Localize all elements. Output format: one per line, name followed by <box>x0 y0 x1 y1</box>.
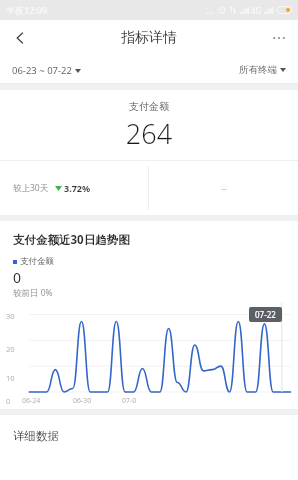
button[interactable]: More options <box>260 20 298 56</box>
staticText: 30 <box>6 311 15 321</box>
staticText: 10 <box>6 373 15 383</box>
staticText: 4G <box>251 5 262 16</box>
staticText: 较上30天 <box>13 182 49 194</box>
staticText: 06-23 ~ 07-22 <box>12 64 72 77</box>
staticText: 指标详情 <box>121 29 177 47</box>
button[interactable]: 06-23 ~ 07-22 <box>12 64 81 77</box>
staticText: 20 <box>6 344 15 354</box>
staticText: 支付金额近30日趋势图 <box>13 232 130 248</box>
staticText: 264 <box>0 115 298 152</box>
staticText: 所有终端 <box>239 64 277 76</box>
staticText: 0 <box>6 396 11 406</box>
staticText: 3.72% <box>64 182 91 194</box>
button[interactable]: 详细数据 <box>13 429 59 443</box>
staticText: 07-22 <box>255 309 276 320</box>
staticText: 0 <box>13 268 22 287</box>
staticText: 06-30 <box>73 396 92 406</box>
staticText: 支付金额 <box>0 100 298 113</box>
button[interactable]: 较上30天 <box>0 161 148 215</box>
staticText: 较前日 0% <box>13 287 53 299</box>
staticText: 支付金额 <box>20 256 54 267</box>
staticText: 07-0 <box>122 396 137 406</box>
button[interactable]: 所有终端 <box>239 64 286 76</box>
staticText: 半夜12:09 <box>6 4 48 16</box>
staticText: 06-24 <box>22 396 41 406</box>
staticText: -- <box>221 182 227 194</box>
button[interactable]: Back <box>0 20 40 56</box>
